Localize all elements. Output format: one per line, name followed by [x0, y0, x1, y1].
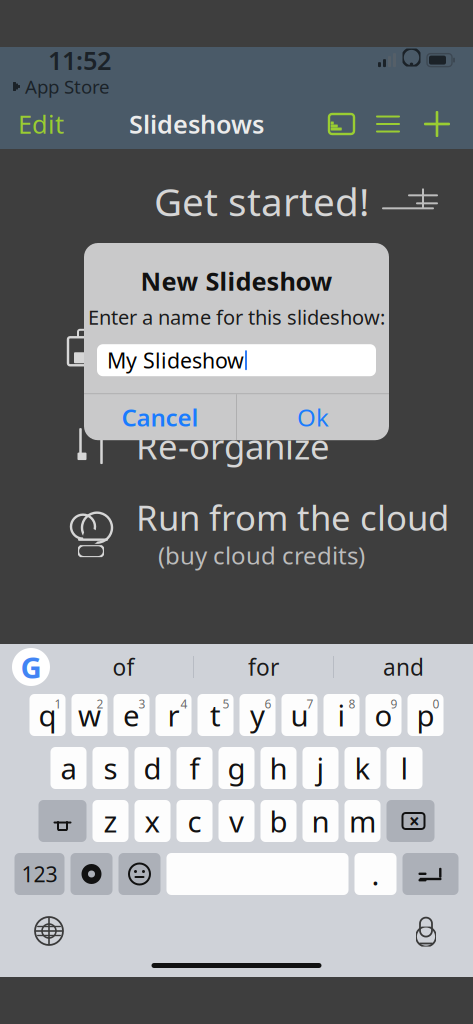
- button[interactable]: Edit: [0, 99, 82, 149]
- staticText: m: [349, 801, 376, 840]
- button[interactable]: y: [239, 694, 275, 736]
- staticText: e: [123, 695, 140, 734]
- staticText: Slideshows: [129, 107, 264, 141]
- button[interactable]: u: [281, 694, 317, 736]
- button[interactable]: t: [197, 694, 233, 736]
- button[interactable]: r: [155, 694, 191, 736]
- button[interactable]: e: [113, 694, 149, 736]
- button[interactable]: c: [176, 800, 212, 842]
- button[interactable]: 123: [14, 853, 64, 895]
- button[interactable]: Voice input: [401, 903, 451, 959]
- staticText: 7: [306, 696, 313, 712]
- button[interactable]: p: [407, 694, 443, 736]
- staticText: Enter a name for this slideshow:: [88, 304, 385, 330]
- staticText: Re-organize: [136, 422, 330, 470]
- staticText: 0: [432, 696, 439, 712]
- staticText: z: [103, 801, 117, 840]
- button[interactable]: o: [365, 694, 401, 736]
- staticText: App Store: [25, 74, 110, 99]
- button[interactable]: of: [54, 644, 193, 690]
- button[interactable]: Shift: [38, 800, 86, 842]
- staticText: x: [144, 801, 160, 840]
- button[interactable]: s: [92, 747, 128, 789]
- button[interactable]: Emoji: [118, 853, 160, 895]
- button[interactable]: App Store: [0, 73, 110, 99]
- staticText: 8: [348, 696, 355, 712]
- staticText: r: [167, 695, 179, 734]
- staticText: d: [143, 748, 161, 787]
- staticText: 2: [96, 696, 103, 712]
- button[interactable]: x: [134, 800, 170, 842]
- button[interactable]: Add slideshow: [413, 106, 461, 142]
- button[interactable]: Ok: [237, 394, 389, 440]
- staticText: ×: [409, 809, 420, 833]
- button[interactable]: f: [176, 747, 212, 789]
- staticText: q: [38, 695, 56, 734]
- staticText: p: [416, 695, 434, 734]
- button[interactable]: Return: [402, 853, 458, 895]
- button[interactable]: i: [323, 694, 359, 736]
- staticText: 3: [138, 696, 145, 712]
- staticText: 5: [222, 696, 229, 712]
- staticText: Ok: [297, 401, 329, 433]
- staticText: Get started!: [154, 175, 369, 228]
- staticText: 6: [264, 696, 271, 712]
- button[interactable]: j: [302, 747, 338, 789]
- staticText: Choose your photos: [136, 300, 341, 394]
- staticText: l: [400, 748, 408, 787]
- button[interactable]: Cancel: [84, 394, 236, 440]
- button[interactable]: for: [194, 644, 333, 690]
- staticText: k: [354, 748, 370, 787]
- staticText: w: [78, 695, 101, 734]
- staticText: g: [227, 748, 245, 787]
- button[interactable]: Change keyboard: [22, 904, 76, 958]
- button[interactable]: a: [50, 747, 86, 789]
- staticText: 9: [390, 696, 397, 712]
- staticText: v: [229, 801, 244, 840]
- staticText: G: [20, 647, 41, 686]
- staticText: i: [337, 695, 345, 734]
- button[interactable]: .: [354, 853, 396, 895]
- staticText: y: [250, 695, 265, 734]
- staticText: My Slideshow: [107, 346, 244, 374]
- staticText: f: [189, 748, 199, 787]
- button[interactable]: Backspace: [386, 800, 434, 842]
- staticText: 1: [54, 696, 61, 712]
- staticText: s: [103, 748, 117, 787]
- button[interactable]: v: [218, 800, 254, 842]
- button[interactable]: n: [302, 800, 338, 842]
- button[interactable]: l: [386, 747, 422, 789]
- staticText: j: [316, 748, 324, 787]
- staticText: Run from the cloud: [136, 494, 449, 541]
- button[interactable]: m: [344, 800, 380, 842]
- staticText: for: [248, 652, 279, 682]
- button[interactable]: d: [134, 747, 170, 789]
- staticText: c: [187, 801, 201, 840]
- button[interactable]: g: [218, 747, 254, 789]
- staticText: b: [269, 801, 287, 840]
- button[interactable]: Cast: [320, 107, 363, 141]
- staticText: a: [60, 748, 76, 787]
- staticText: 11:52: [48, 43, 111, 77]
- button[interactable]: z: [92, 800, 128, 842]
- staticText: of: [112, 652, 134, 682]
- button[interactable]: h: [260, 747, 296, 789]
- button[interactable]: Keyboard settings: [70, 853, 112, 895]
- staticText: 123: [21, 860, 57, 888]
- button[interactable]: Google search: [8, 644, 54, 690]
- button[interactable]: q: [29, 694, 65, 736]
- staticText: (buy cloud credits): [158, 539, 365, 572]
- button[interactable]: w: [71, 694, 107, 736]
- button[interactable]: Menu: [363, 107, 413, 141]
- staticText: h: [269, 748, 287, 787]
- staticText: o: [374, 695, 392, 734]
- staticText: n: [311, 801, 329, 840]
- button[interactable]: and: [334, 644, 473, 690]
- staticText: New Slideshow: [140, 264, 332, 298]
- staticText: and: [383, 652, 424, 682]
- staticText: Cancel: [121, 401, 198, 433]
- button[interactable]: b: [260, 800, 296, 842]
- button[interactable]: k: [344, 747, 380, 789]
- staticText: 4: [180, 696, 187, 712]
